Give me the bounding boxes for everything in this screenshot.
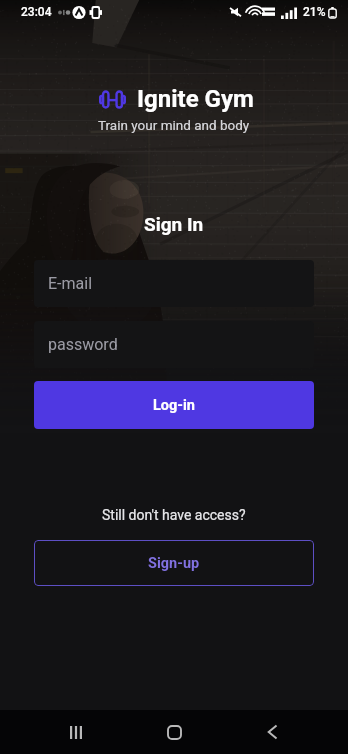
staticText: Train your mind and body — [98, 117, 250, 133]
button[interactable]: E-mail — [34, 260, 314, 307]
staticText: Ignite Gym — [137, 85, 254, 113]
button[interactable]: Back — [243, 710, 301, 754]
button[interactable]: Sign-up — [34, 540, 314, 586]
staticText: Sign In — [144, 213, 204, 235]
staticText: Log-in — [153, 397, 195, 414]
button[interactable]: Recent apps — [47, 710, 105, 754]
staticText: password — [48, 335, 118, 354]
staticText: E-mail — [48, 274, 93, 293]
staticText: Sign-up — [148, 555, 200, 572]
button[interactable]: Log-in — [34, 381, 314, 429]
staticText: 21% — [303, 5, 326, 19]
staticText: Still don't have access? — [102, 507, 246, 523]
button[interactable]: password — [34, 321, 314, 368]
staticText: 23:04 — [21, 5, 52, 19]
button[interactable]: Home — [145, 710, 203, 754]
